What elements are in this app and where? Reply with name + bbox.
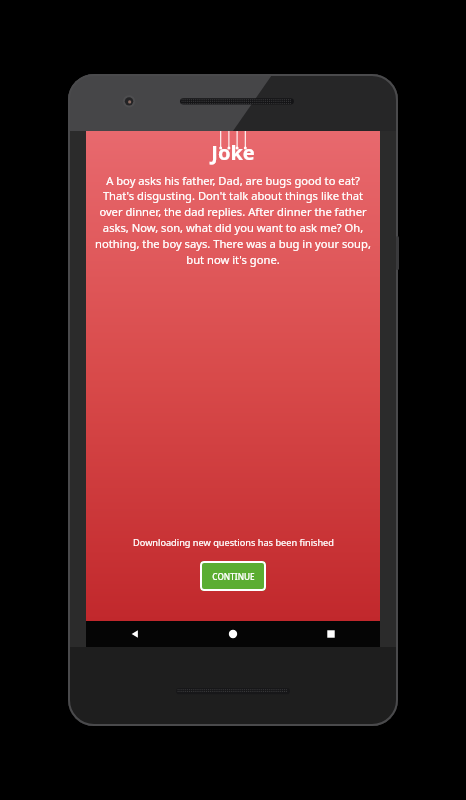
staticText: CONTINUE — [212, 571, 255, 582]
button[interactable]: Home — [184, 621, 282, 647]
button[interactable]: Back — [86, 621, 184, 647]
button[interactable]: CONTINUE — [200, 561, 266, 591]
staticText: A boy asks his father, Dad, are bugs goo… — [94, 173, 372, 268]
button[interactable]: Recent apps — [282, 621, 380, 647]
staticText: Downloading new questions has been finis… — [133, 536, 334, 549]
staticText: Joke — [211, 139, 255, 166]
